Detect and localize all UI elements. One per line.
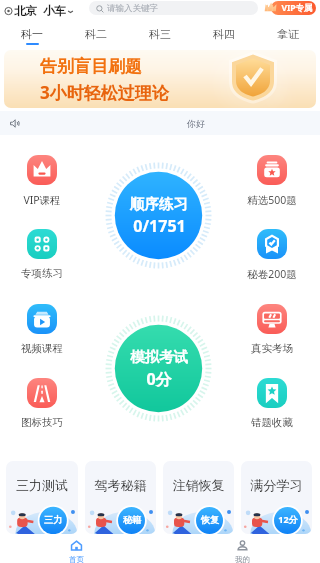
button[interactable]: 顺序练习 <box>105 162 212 269</box>
staticText: 0分 <box>146 368 172 390</box>
button[interactable]: 秘卷200题 <box>237 229 307 281</box>
staticText: 满分学习 <box>241 477 312 493</box>
staticText: 恢复 <box>201 514 219 525</box>
staticText: 请输入关键字 <box>107 3 158 14</box>
button[interactable]: 拿证 <box>256 22 320 50</box>
button[interactable]: 科三 <box>128 22 192 50</box>
staticText: 秘卷200题 <box>247 267 297 281</box>
staticText: 你好 <box>187 118 205 129</box>
staticText: 北京 <box>14 4 37 18</box>
staticText: 12分 <box>278 513 298 525</box>
button[interactable]: 专项练习 <box>7 229 77 280</box>
staticText: 三力 <box>44 514 62 525</box>
staticText: 专项练习 <box>21 267 63 280</box>
button[interactable]: VIP专属 <box>271 1 316 15</box>
staticText: 科四 <box>213 27 235 41</box>
staticText: 顺序练习 <box>130 195 188 213</box>
staticText: 0/1751 <box>133 215 186 237</box>
staticText: VIP专属 <box>281 2 313 14</box>
button[interactable]: 三力测试 <box>6 461 78 534</box>
staticText: 小车 <box>43 4 66 18</box>
button[interactable]: 科四 <box>192 22 256 50</box>
staticText: 注销恢复 <box>163 477 234 493</box>
button[interactable]: 视频课程 <box>7 304 77 355</box>
button[interactable]: 精选500题 <box>237 155 307 207</box>
button[interactable]: 科一 <box>0 22 64 50</box>
staticText: 科三 <box>149 27 171 41</box>
staticText: 错题收藏 <box>251 416 293 429</box>
staticText: 科二 <box>85 27 107 41</box>
button[interactable]: 首页 <box>61 535 91 563</box>
button[interactable]: 请输入关键字 <box>89 1 258 15</box>
staticText: 视频课程 <box>21 342 63 355</box>
button[interactable]: 注销恢复 <box>163 461 234 534</box>
staticText: 秘籍 <box>123 514 141 525</box>
button[interactable]: 北京 <box>4 2 74 20</box>
staticText: 模拟考试 <box>130 348 188 366</box>
button[interactable]: 错题收藏 <box>237 378 307 429</box>
staticText: 告别盲目刷题 <box>40 56 142 77</box>
button[interactable]: 模拟考试 <box>105 315 212 422</box>
staticText: 首页 <box>69 555 84 563</box>
button[interactable]: 图标技巧 <box>7 378 77 429</box>
button[interactable]: VIP课程 <box>7 155 77 207</box>
staticText: 真实考场 <box>251 342 293 355</box>
staticText: 精选500题 <box>247 193 297 207</box>
button[interactable]: Announcement <box>0 111 320 135</box>
other: Announcement <box>9 118 20 129</box>
button[interactable]: 我的 <box>227 535 257 563</box>
staticText: 拿证 <box>277 27 299 41</box>
button[interactable]: 告别盲目刷题 <box>4 50 316 108</box>
button[interactable]: 科二 <box>64 22 128 50</box>
staticText: 驾考秘籍 <box>85 477 156 493</box>
staticText: 我的 <box>235 555 250 563</box>
staticText: VIP课程 <box>23 193 61 207</box>
button[interactable]: 满分学习 <box>241 461 312 534</box>
staticText: 3小时轻松过理论 <box>40 81 169 104</box>
staticText: 三力测试 <box>6 477 78 493</box>
button[interactable]: 真实考场 <box>237 304 307 355</box>
staticText: 图标技巧 <box>21 416 63 429</box>
staticText: 科一 <box>21 27 43 41</box>
button[interactable]: 驾考秘籍 <box>85 461 156 534</box>
